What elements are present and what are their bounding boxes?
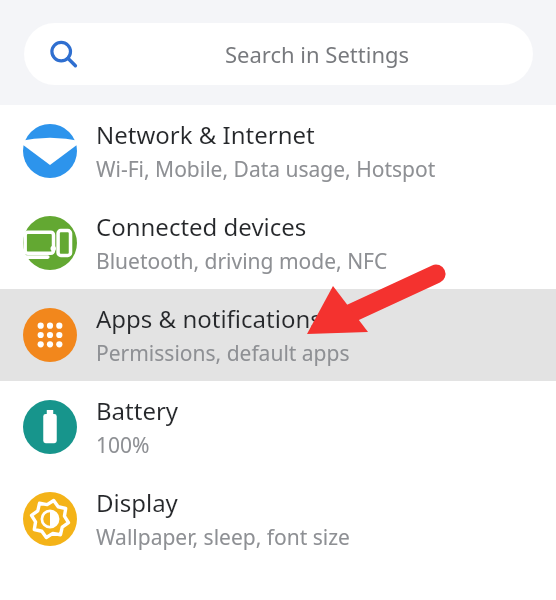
staticText: Apps & notifications	[96, 302, 322, 335]
button[interactable]: Display	[0, 473, 556, 565]
button[interactable]: Connected devices	[0, 197, 556, 289]
button[interactable]: Apps & notifications	[0, 289, 556, 381]
button[interactable]: Search in Settings	[24, 23, 533, 85]
staticText: Search in Settings	[225, 39, 410, 69]
staticText: Wallpaper, sleep, font size	[96, 523, 350, 552]
staticText: 100%	[96, 431, 150, 460]
staticText: Network & Internet	[96, 118, 315, 151]
staticText: Bluetooth, driving mode, NFC	[96, 247, 388, 276]
staticText: Permissions, default apps	[96, 339, 350, 368]
staticText: Battery	[96, 394, 179, 427]
staticText: Connected devices	[96, 210, 307, 243]
staticText: Display	[96, 486, 178, 519]
button[interactable]: Battery	[0, 381, 556, 473]
staticText: Wi-Fi, Mobile, Data usage, Hotspot	[96, 155, 436, 184]
button[interactable]: Network & Internet	[0, 105, 556, 197]
